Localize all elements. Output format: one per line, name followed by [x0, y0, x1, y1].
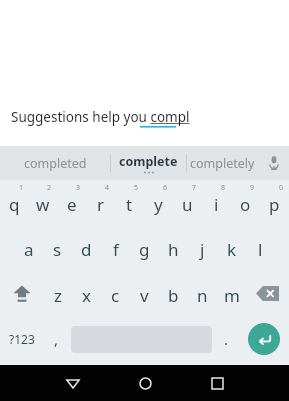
staticText: h [168, 238, 179, 261]
staticText: 9 [250, 183, 255, 193]
button[interactable]: , [44, 316, 69, 362]
button[interactable]: 0 [260, 180, 289, 225]
staticText: u [182, 193, 193, 216]
button[interactable]: g [130, 225, 159, 270]
button[interactable]: Home [109, 365, 181, 401]
button[interactable]: completely [187, 146, 258, 180]
button[interactable]: 2 [28, 180, 57, 225]
button[interactable]: 9 [231, 180, 260, 225]
staticText: d [81, 238, 92, 261]
staticText: e [67, 193, 77, 216]
staticText: q [9, 193, 20, 216]
button[interactable]: z [43, 270, 72, 316]
button[interactable]: 7 [173, 180, 202, 225]
staticText: y [154, 193, 163, 216]
button[interactable]: complete [111, 146, 186, 180]
staticText: r [97, 193, 105, 216]
button[interactable]: l [246, 225, 275, 270]
staticText: 8 [221, 183, 226, 193]
button[interactable]: m [217, 270, 246, 316]
staticText: w [36, 193, 50, 216]
button[interactable]: Recents [181, 365, 253, 401]
staticText: Suggestions help you compl [11, 108, 190, 126]
button[interactable]: b [159, 270, 188, 316]
staticText: 7 [192, 183, 197, 193]
staticText: 3 [76, 183, 81, 193]
button[interactable]: 5 [115, 180, 144, 225]
staticText: j [200, 238, 205, 261]
button[interactable]: k [217, 225, 246, 270]
staticText: c [111, 284, 120, 307]
staticText: 4 [105, 183, 110, 193]
button[interactable]: n [188, 270, 217, 316]
button[interactable]: Backspace [246, 270, 289, 316]
button[interactable]: Back [37, 365, 109, 401]
staticText: k [227, 238, 237, 261]
button[interactable]: Shift [0, 270, 43, 316]
button[interactable]: 3 [57, 180, 86, 225]
button[interactable]: c [101, 270, 130, 316]
button[interactable]: . [214, 316, 239, 362]
staticText: x [82, 284, 91, 307]
button[interactable]: Voice input [258, 146, 289, 180]
staticText: 2 [47, 183, 52, 193]
staticText: b [168, 284, 179, 307]
button[interactable]: 8 [202, 180, 231, 225]
staticText: completely [190, 155, 255, 172]
staticText: s [53, 238, 62, 261]
staticText: 6 [163, 183, 168, 193]
button[interactable]: h [159, 225, 188, 270]
staticText: complete [119, 153, 178, 170]
staticText: g [139, 238, 150, 261]
staticText: v [140, 284, 149, 307]
staticText: o [240, 193, 251, 216]
staticText: t [126, 193, 133, 216]
staticText: l [258, 238, 263, 261]
button[interactable]: j [188, 225, 217, 270]
staticText: completed [24, 155, 87, 172]
button[interactable]: x [72, 270, 101, 316]
staticText: m [224, 284, 240, 307]
staticText: i [214, 193, 219, 216]
staticText: f [113, 238, 119, 261]
staticText: z [54, 284, 62, 307]
button[interactable]: f [101, 225, 130, 270]
staticText: p [269, 193, 280, 216]
button[interactable]: Enter [239, 316, 289, 362]
staticText: . [224, 329, 229, 349]
button[interactable]: v [130, 270, 159, 316]
button[interactable]: d [72, 225, 101, 270]
button[interactable]: a [14, 225, 43, 270]
button[interactable]: s [43, 225, 72, 270]
button[interactable]: ?123 [0, 316, 44, 362]
staticText: 5 [134, 183, 139, 193]
button[interactable]: 6 [144, 180, 173, 225]
staticText: n [197, 284, 208, 307]
staticText: , [54, 329, 59, 349]
button[interactable]: 4 [86, 180, 115, 225]
button[interactable]: completed [0, 146, 110, 180]
staticText: a [24, 238, 34, 261]
staticText: ?123 [9, 331, 35, 347]
button[interactable]: 1 [0, 180, 28, 225]
staticText: 0 [279, 183, 284, 193]
staticText: 1 [19, 183, 24, 193]
